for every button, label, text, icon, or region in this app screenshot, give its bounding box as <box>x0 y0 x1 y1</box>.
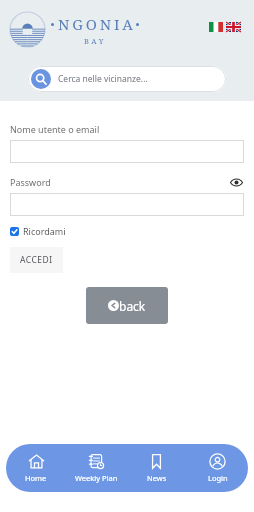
button[interactable]: Italiano <box>209 22 223 32</box>
button[interactable]: back <box>86 287 168 324</box>
staticText: Weekly Plan <box>75 473 118 483</box>
staticText: back <box>119 298 146 314</box>
button[interactable]: Show password <box>228 174 244 190</box>
button[interactable]: Home <box>6 444 66 492</box>
button[interactable]: Ricordami <box>10 225 66 237</box>
button[interactable]: News <box>126 444 187 492</box>
button[interactable] <box>10 140 244 163</box>
button[interactable]: Weekly Plan <box>66 444 126 492</box>
staticText: Ricordami <box>23 225 66 237</box>
button[interactable]: Login <box>187 444 248 492</box>
staticText: Cerca nelle vicinanze... <box>58 73 148 85</box>
staticText: NGONIA <box>58 14 136 34</box>
button[interactable]: Cerca nelle vicinanze... <box>28 66 226 92</box>
button[interactable] <box>10 193 244 216</box>
staticText: Nome utente o email <box>10 123 100 135</box>
button[interactable]: English <box>226 22 241 32</box>
staticText: Home <box>25 473 47 483</box>
staticText: ACCEDI <box>20 254 53 266</box>
staticText: Login <box>208 473 228 483</box>
button[interactable]: ACCEDI <box>10 247 63 273</box>
staticText: News <box>147 473 167 483</box>
staticText: BAY <box>84 36 107 46</box>
staticText: Password <box>10 176 51 188</box>
